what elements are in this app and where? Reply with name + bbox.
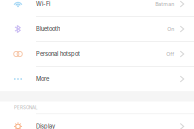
staticText: On bbox=[167, 26, 174, 32]
button[interactable]: More bbox=[0, 67, 194, 91]
button[interactable]: Display bbox=[0, 114, 194, 129]
staticText: More bbox=[36, 75, 49, 82]
staticText: Batman bbox=[155, 1, 174, 7]
button[interactable]: Personal hotspot bbox=[0, 42, 194, 66]
staticText: Wi-Fi bbox=[36, 0, 50, 7]
button[interactable]: Wi-Fi bbox=[0, 0, 194, 16]
staticText: Display bbox=[36, 123, 55, 129]
staticText: PERSONAL bbox=[14, 105, 38, 110]
staticText: Bluetooth bbox=[36, 25, 60, 32]
button[interactable]: Bluetooth bbox=[0, 17, 194, 41]
staticText: Off bbox=[166, 51, 174, 57]
staticText: Personal hotspot bbox=[36, 50, 80, 57]
